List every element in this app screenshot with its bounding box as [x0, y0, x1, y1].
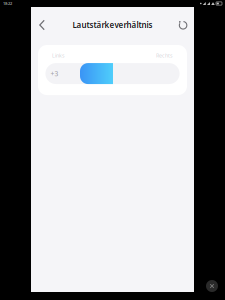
staticText: 18:22 — [3, 1, 12, 6]
button[interactable]: Zurücksetzen — [172, 12, 194, 38]
staticText: Lautstärkeverhältnis — [72, 20, 152, 30]
staticText: Rechts — [156, 52, 173, 59]
staticText: Links — [52, 52, 65, 59]
button[interactable]: Schließen — [204, 278, 220, 294]
button[interactable]: +3 — [45, 63, 180, 84]
button[interactable]: Zurück — [31, 12, 53, 38]
staticText: +3 — [50, 69, 58, 78]
